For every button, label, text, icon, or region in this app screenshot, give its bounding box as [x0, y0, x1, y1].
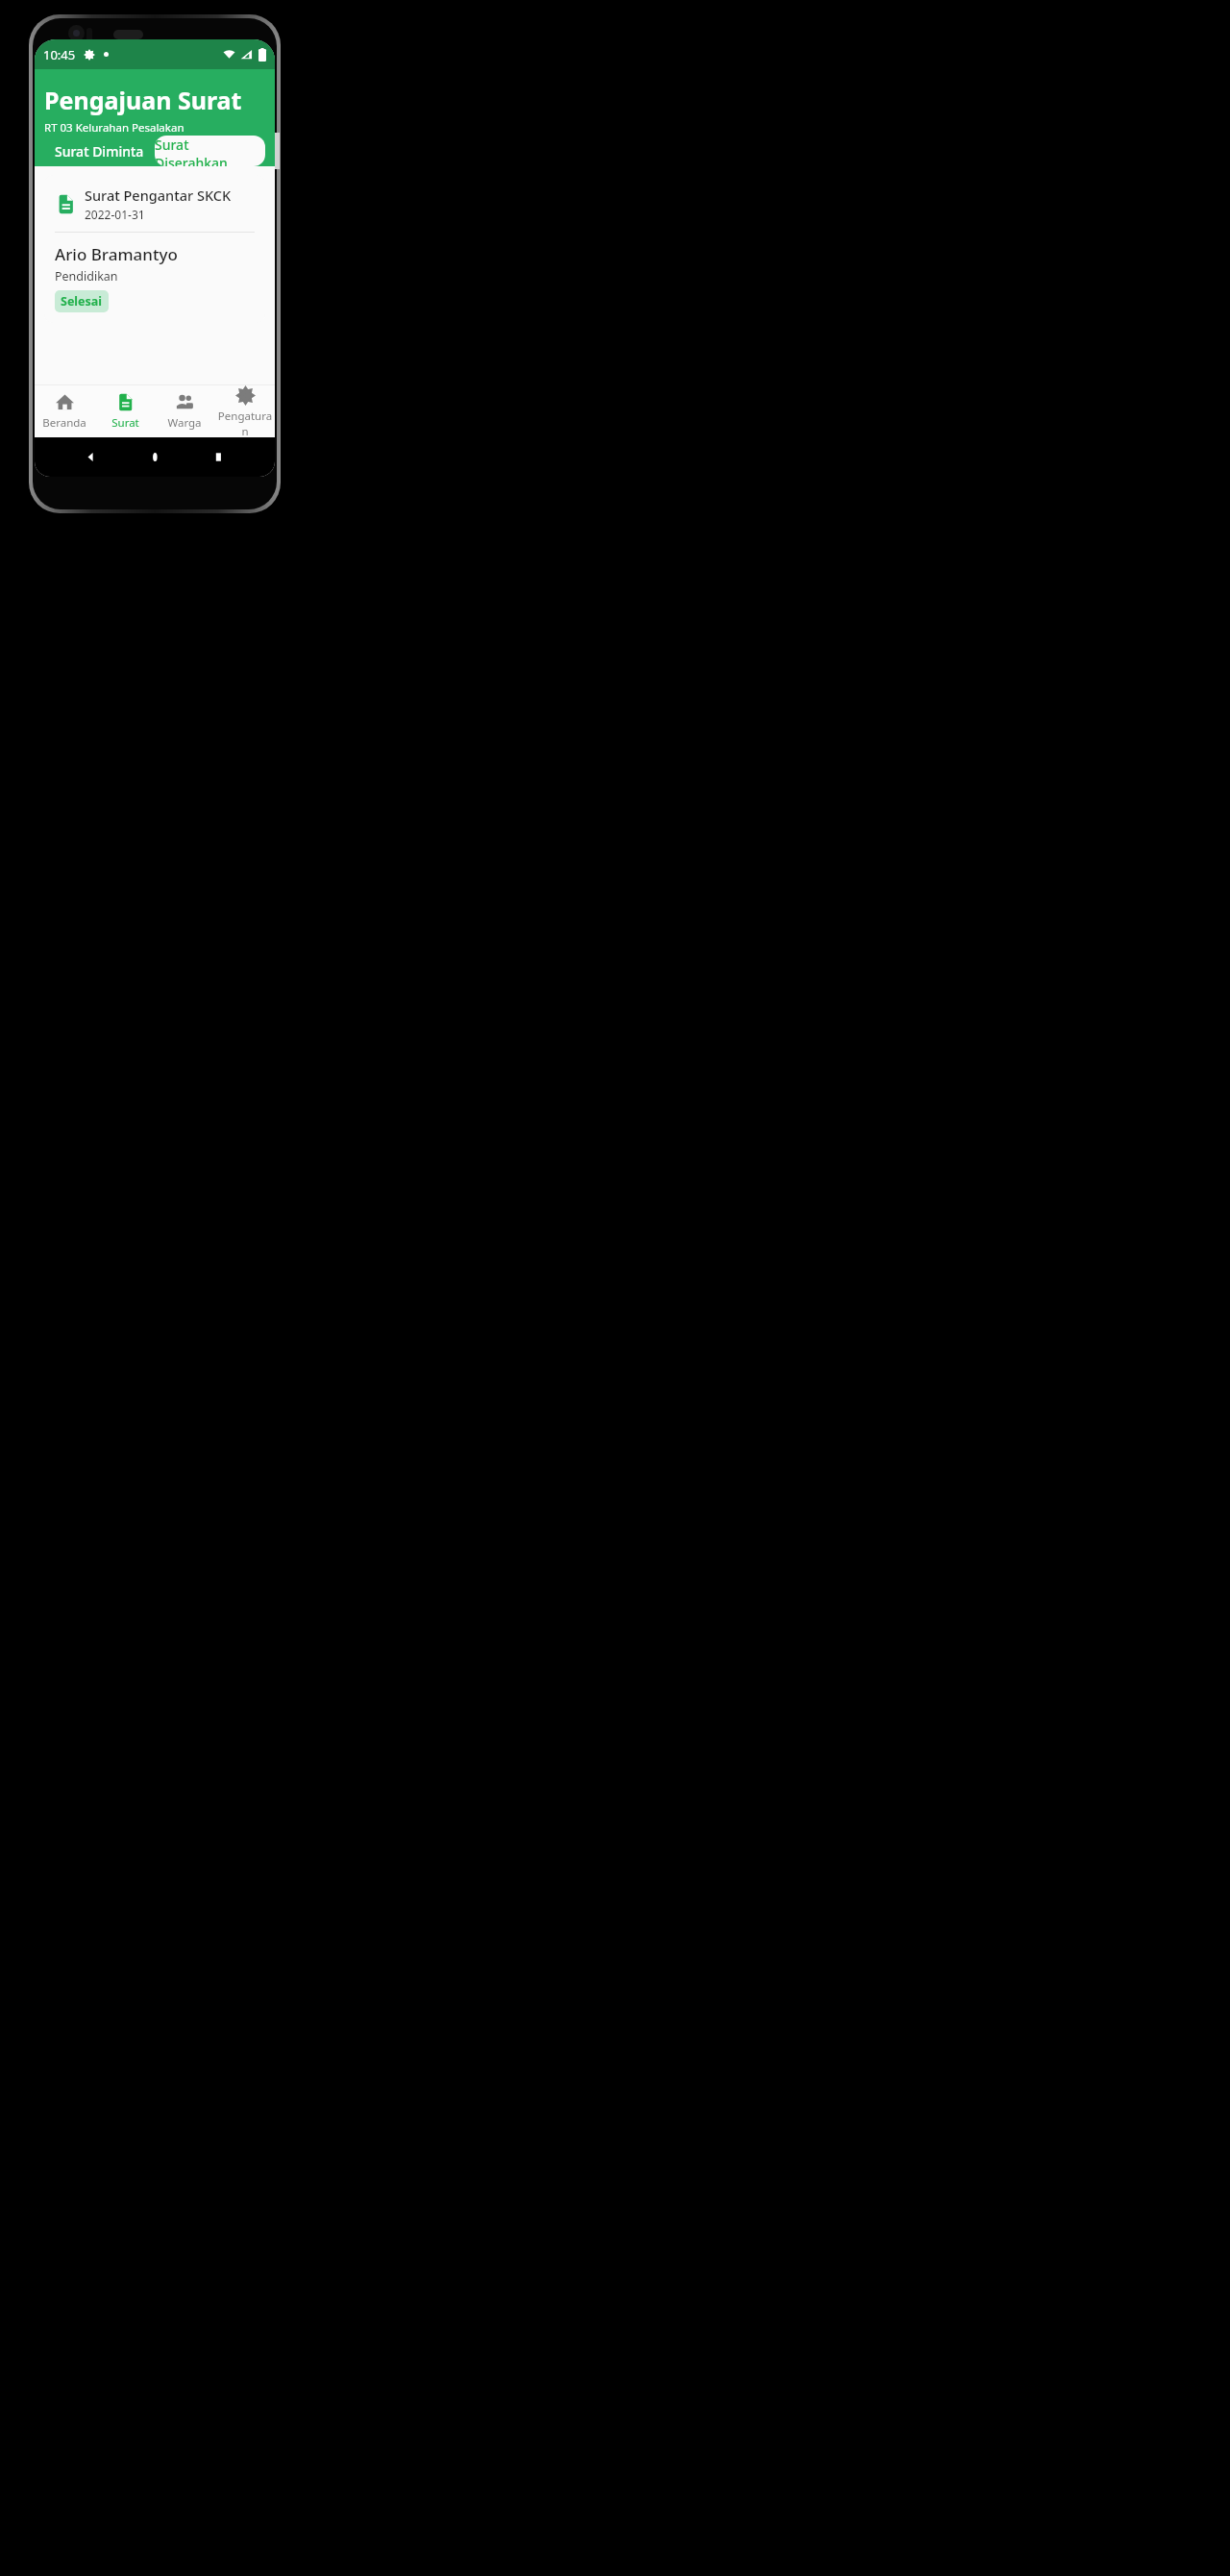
button[interactable]: Recents [211, 450, 226, 464]
staticText: Surat Pengantar SKCK [85, 186, 232, 205]
staticText: Surat [111, 415, 139, 431]
button[interactable]: Home [148, 450, 162, 464]
button[interactable]: Surat Pengantar SKCK [44, 175, 265, 323]
staticText: 2022-01-31 [85, 207, 145, 222]
staticText: Pengajuan Surat [44, 84, 242, 116]
staticText: Surat Diminta [55, 142, 144, 161]
staticText: Beranda [42, 415, 86, 431]
staticText: Pengaturan [215, 409, 275, 437]
button[interactable]: Surat Diserahkan [155, 136, 265, 166]
staticText: RT 03 Kelurahan Pesalakan [44, 120, 184, 136]
button[interactable]: Back [84, 450, 98, 464]
staticText: 10:45 [43, 46, 76, 63]
staticText: Warga [167, 415, 202, 431]
button[interactable]: Warga [155, 385, 214, 437]
staticText: Ario Bramantyo [55, 243, 178, 265]
staticText: Surat Diserahkan [155, 136, 265, 166]
staticText: Selesai [61, 293, 103, 310]
staticText: Pendidikan [55, 268, 118, 285]
button[interactable]: Surat [95, 385, 155, 437]
button[interactable]: Surat Diminta [44, 136, 155, 166]
button[interactable]: Beranda [35, 385, 94, 437]
button[interactable]: Pengaturan [215, 385, 275, 437]
